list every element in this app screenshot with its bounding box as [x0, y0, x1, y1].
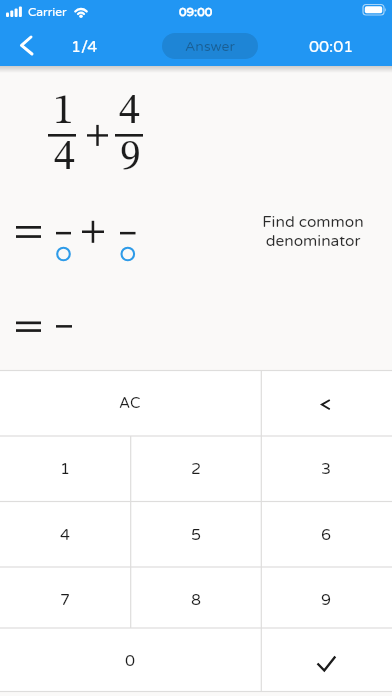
staticText: Answer: [185, 38, 235, 55]
staticText: 1/4: [71, 37, 98, 56]
staticText: 0: [125, 651, 136, 670]
staticText: 00:01: [309, 37, 354, 56]
button[interactable]: [262, 371, 392, 435]
staticText: 6: [321, 525, 332, 544]
button[interactable]: 9: [261, 567, 392, 631]
staticText: 4: [119, 91, 140, 133]
staticText: 2: [191, 459, 202, 478]
button[interactable]: [8, 30, 48, 60]
staticText: 5: [191, 525, 202, 544]
button[interactable]: 3: [261, 436, 392, 500]
staticText: 4: [60, 525, 71, 544]
button[interactable]: 5: [131, 502, 262, 566]
staticText: 9: [321, 590, 332, 609]
staticText: Carrier: [28, 5, 67, 19]
staticText: 8: [191, 590, 202, 609]
button[interactable]: 4: [0, 502, 131, 566]
staticText: 1: [53, 91, 74, 133]
staticText: AC: [119, 394, 141, 412]
staticText: 3: [321, 459, 332, 478]
button[interactable]: [262, 629, 392, 691]
button[interactable]: Answer: [162, 33, 258, 59]
staticText: 1: [60, 459, 71, 478]
button[interactable]: 7: [0, 567, 131, 631]
button[interactable]: AC: [0, 371, 260, 435]
button[interactable]: 8: [131, 567, 262, 631]
staticText: 09:00: [179, 5, 213, 19]
button[interactable]: 0: [0, 629, 260, 691]
staticText: 9: [120, 137, 141, 179]
button[interactable]: 2: [131, 436, 262, 500]
button[interactable]: 6: [261, 502, 392, 566]
button[interactable]: 1: [0, 436, 131, 500]
staticText: 4: [54, 137, 75, 179]
staticText: Find common denominator: [262, 213, 364, 250]
staticText: 7: [60, 590, 71, 609]
